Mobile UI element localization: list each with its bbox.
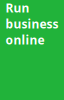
staticText: Run business online [5, 0, 58, 48]
